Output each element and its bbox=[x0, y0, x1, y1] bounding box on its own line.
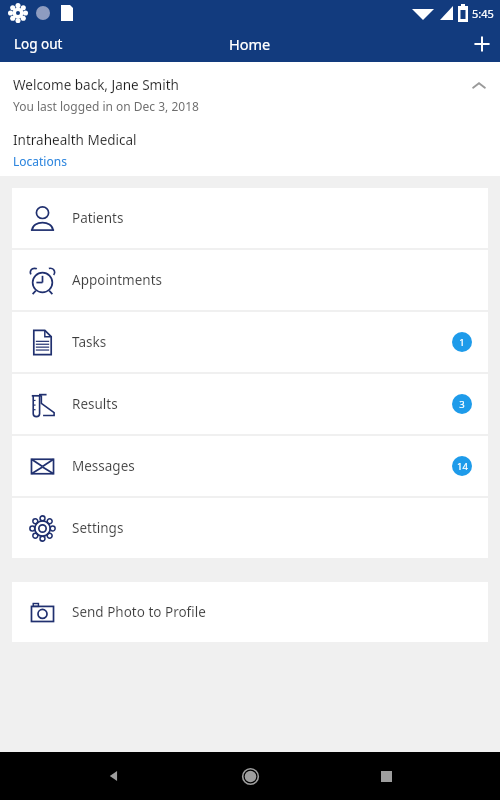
button[interactable]: Patients bbox=[12, 188, 488, 248]
button[interactable]: Log out bbox=[0, 28, 77, 60]
staticText: Results bbox=[72, 395, 118, 413]
staticText: Locations bbox=[13, 153, 67, 169]
button[interactable]: Recents bbox=[364, 754, 408, 798]
staticText: Patients bbox=[72, 209, 124, 227]
button[interactable]: Settings bbox=[12, 498, 488, 558]
staticText: 1 bbox=[459, 336, 465, 349]
staticText: Send Photo to Profile bbox=[72, 603, 206, 621]
staticText: 3 bbox=[459, 398, 465, 411]
staticText: You last logged in on Dec 3, 2018 bbox=[13, 98, 199, 114]
staticText: Log out bbox=[14, 35, 63, 53]
button[interactable]: Messages bbox=[12, 436, 488, 496]
button[interactable]: Appointments bbox=[12, 250, 488, 310]
staticText: Welcome back, Jane Smith bbox=[13, 76, 179, 94]
staticText: Settings bbox=[72, 519, 124, 537]
button[interactable]: Results bbox=[12, 374, 488, 434]
button[interactable]: Send Photo to Profile bbox=[12, 582, 488, 642]
staticText: Home bbox=[229, 34, 271, 54]
staticText: Tasks bbox=[72, 333, 107, 351]
button[interactable]: Home bbox=[228, 754, 272, 798]
staticText: Intrahealth Medical bbox=[13, 131, 137, 149]
button[interactable]: Tasks bbox=[12, 312, 488, 372]
staticText: Appointments bbox=[72, 271, 163, 289]
staticText: 5:45 bbox=[472, 6, 494, 21]
button[interactable]: Add bbox=[464, 26, 500, 62]
button[interactable]: Collapse bbox=[458, 65, 500, 107]
button[interactable]: Locations bbox=[13, 153, 67, 169]
staticText: 14 bbox=[457, 460, 468, 473]
staticText: Messages bbox=[72, 457, 135, 475]
button[interactable]: Back bbox=[92, 754, 136, 798]
